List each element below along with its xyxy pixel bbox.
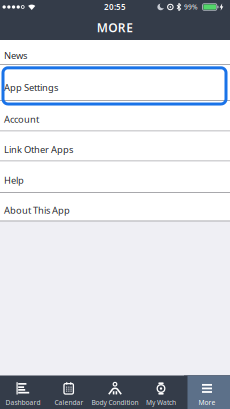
staticText: 20:55 — [104, 2, 126, 12]
button[interactable]: Link Other Apps — [0, 131, 230, 161]
staticText: 99% — [184, 3, 198, 11]
button[interactable]: More — [184, 375, 230, 409]
staticText: Calendar — [54, 398, 83, 407]
staticText: Link Other Apps — [4, 143, 73, 156]
button[interactable]: Account — [0, 101, 230, 131]
staticText: Account — [4, 113, 39, 125]
staticText: Dashboard — [5, 398, 40, 407]
staticText: Body Condition — [91, 398, 138, 407]
staticText: Help — [4, 174, 24, 186]
staticText: App Settings — [4, 81, 58, 94]
button[interactable]: Dashboard — [0, 375, 46, 409]
button[interactable]: Body Condition — [92, 375, 138, 409]
button[interactable]: App Settings — [0, 65, 230, 101]
button[interactable]: Help — [0, 161, 230, 193]
staticText: MORE — [97, 19, 133, 35]
staticText: News — [4, 49, 27, 62]
staticText: More — [198, 398, 215, 407]
button[interactable]: My Watch — [138, 375, 184, 409]
button[interactable]: News — [0, 40, 230, 65]
staticText: My Watch — [146, 398, 176, 407]
button[interactable]: Calendar — [46, 375, 92, 409]
staticText: About This App — [4, 204, 70, 216]
button[interactable]: About This App — [0, 193, 230, 221]
